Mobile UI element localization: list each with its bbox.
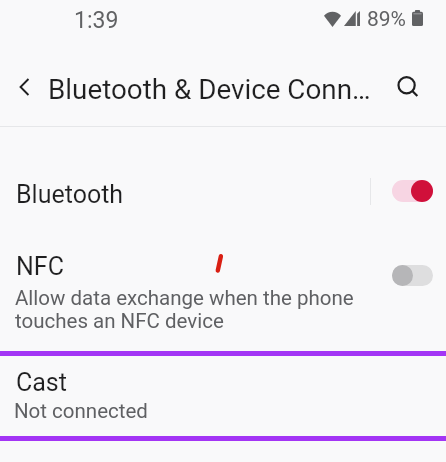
button[interactable]: NFC (0, 248, 446, 342)
button[interactable]: Bluetooth (0, 161, 446, 227)
staticText: Bluetooth & Device Conn… (48, 73, 388, 106)
staticText: 1:39 (74, 7, 119, 34)
button[interactable]: Back (4, 67, 44, 107)
staticText: Cast (16, 368, 67, 397)
staticText: Bluetooth (16, 180, 124, 209)
staticText: NFC (16, 252, 64, 281)
button[interactable]: NFC off (386, 254, 436, 294)
staticText: 89% (367, 7, 406, 32)
staticText: Not connected (14, 399, 148, 423)
button[interactable]: Search (387, 64, 431, 108)
button[interactable]: Bluetooth on (386, 172, 436, 216)
button[interactable]: Cast (0, 363, 446, 437)
staticText: Allow data exchange when the phone touch… (15, 286, 354, 333)
